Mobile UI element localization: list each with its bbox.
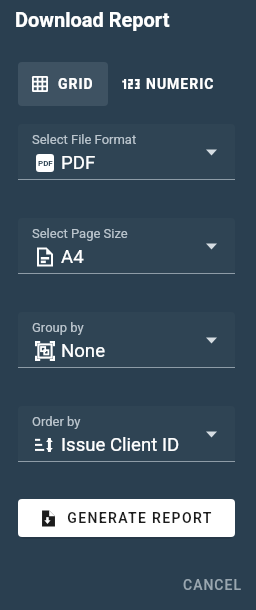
staticText: GRID xyxy=(58,76,94,92)
button[interactable]: GENERATE REPORT xyxy=(18,499,235,537)
button[interactable]: CANCEL xyxy=(175,570,250,600)
button[interactable]: Group by xyxy=(18,312,235,367)
staticText: None xyxy=(61,340,105,362)
staticText: PDF xyxy=(61,152,96,174)
staticText: Download Report xyxy=(15,8,170,31)
staticText: Order by xyxy=(32,414,81,429)
button[interactable]: GRID xyxy=(18,62,108,106)
staticText: Group by xyxy=(32,320,84,335)
button[interactable]: Select File Format xyxy=(18,124,235,179)
staticText: Issue Client ID xyxy=(61,434,180,456)
button[interactable]: Order by xyxy=(18,406,235,461)
staticText: A4 xyxy=(61,246,84,268)
staticText: Select Page Size xyxy=(32,226,128,241)
button[interactable]: NUMERIC xyxy=(108,62,229,106)
staticText: CANCEL xyxy=(183,577,242,593)
staticText: NUMERIC xyxy=(146,76,215,92)
button[interactable]: Select Page Size xyxy=(18,218,235,273)
staticText: GENERATE REPORT xyxy=(67,510,213,526)
staticText: Select File Format xyxy=(32,132,137,147)
staticText: PDF xyxy=(38,159,53,168)
